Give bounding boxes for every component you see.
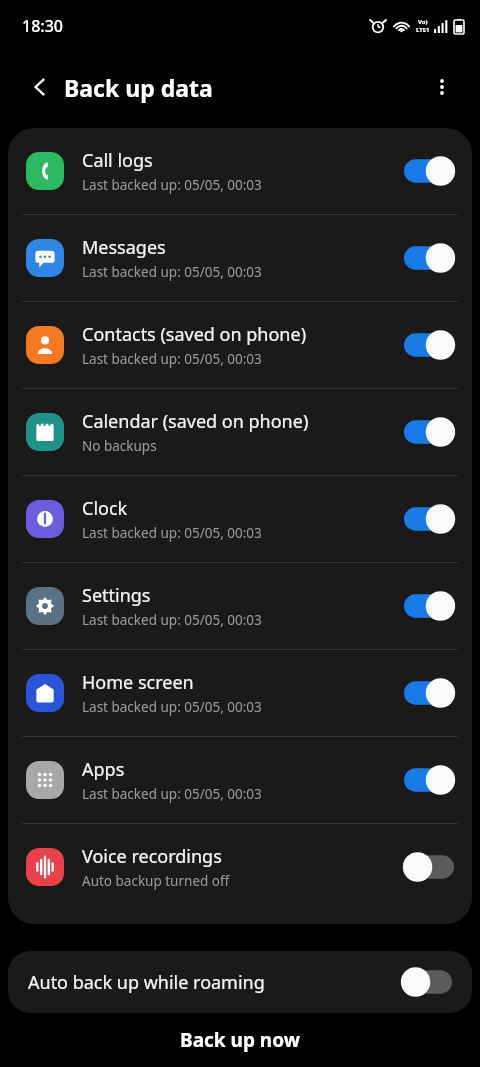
staticText: Apps bbox=[82, 757, 125, 782]
button[interactable]: On bbox=[404, 590, 454, 622]
staticText: Back up data bbox=[64, 72, 213, 103]
staticText: Last backed up: 05/05, 00:03 bbox=[82, 698, 262, 716]
staticText: Clock bbox=[82, 496, 128, 521]
staticText: Last backed up: 05/05, 00:03 bbox=[82, 611, 262, 629]
button[interactable]: Back up now bbox=[0, 1013, 480, 1067]
button[interactable]: More options bbox=[420, 65, 464, 109]
button[interactable]: Messages bbox=[8, 215, 472, 301]
staticText: Contacts (saved on phone) bbox=[82, 322, 307, 347]
button[interactable]: Contacts (saved on phone) bbox=[8, 302, 472, 388]
staticText: No backups bbox=[82, 437, 157, 455]
button[interactable]: On bbox=[404, 677, 454, 709]
staticText: Last backed up: 05/05, 00:03 bbox=[82, 785, 262, 803]
staticText: Auto back up while roaming bbox=[28, 970, 402, 995]
button[interactable]: Call logs bbox=[8, 128, 472, 214]
staticText: LTE1 bbox=[416, 26, 430, 34]
button[interactable]: On bbox=[404, 764, 454, 796]
staticText: Vo) bbox=[418, 18, 428, 26]
button[interactable]: On bbox=[404, 242, 454, 274]
button[interactable]: Calendar (saved on phone) bbox=[8, 389, 472, 475]
staticText: Settings bbox=[82, 583, 151, 608]
staticText: Last backed up: 05/05, 00:03 bbox=[82, 524, 262, 542]
staticText: Last backed up: 05/05, 00:03 bbox=[82, 350, 262, 368]
staticText: Voice recordings bbox=[82, 844, 222, 869]
button[interactable]: Back bbox=[18, 65, 62, 109]
button[interactable]: Home screen bbox=[8, 650, 472, 736]
staticText: Calendar (saved on phone) bbox=[82, 409, 309, 434]
button[interactable]: Auto back up while roaming bbox=[8, 951, 472, 1013]
staticText: Last backed up: 05/05, 00:03 bbox=[82, 263, 262, 281]
button[interactable]: On bbox=[404, 416, 454, 448]
button[interactable]: On bbox=[404, 329, 454, 361]
button[interactable]: Clock bbox=[8, 476, 472, 562]
staticText: Messages bbox=[82, 235, 166, 260]
button[interactable]: Off bbox=[402, 966, 452, 998]
staticText: Home screen bbox=[82, 670, 194, 695]
staticText: Call logs bbox=[82, 148, 153, 173]
staticText: 18:30 bbox=[22, 15, 63, 37]
button[interactable]: Settings bbox=[8, 563, 472, 649]
button[interactable]: On bbox=[404, 155, 454, 187]
button[interactable]: Off bbox=[404, 851, 454, 883]
button[interactable]: Voice recordings bbox=[8, 824, 472, 910]
button[interactable]: On bbox=[404, 503, 454, 535]
button[interactable]: Apps bbox=[8, 737, 472, 823]
staticText: Last backed up: 05/05, 00:03 bbox=[82, 176, 262, 194]
staticText: Auto backup turned off bbox=[82, 872, 230, 890]
staticText: Back up now bbox=[180, 1027, 300, 1053]
